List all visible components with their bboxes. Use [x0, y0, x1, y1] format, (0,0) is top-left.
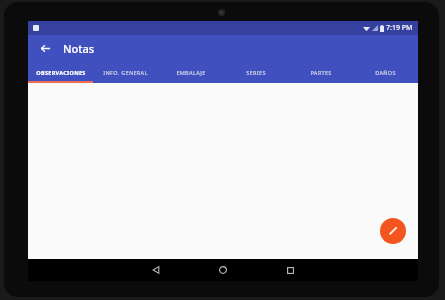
staticText: INFO. GENERAL: [103, 69, 148, 76]
staticText: 7:19 PM: [386, 23, 413, 33]
button[interactable]: EMBALAJE: [158, 61, 223, 83]
button[interactable]: Home: [212, 259, 234, 281]
button[interactable]: Back: [145, 259, 167, 281]
button[interactable]: DAÑOS: [353, 61, 418, 83]
staticText: Notas: [63, 41, 95, 56]
button[interactable]: Back: [35, 38, 55, 58]
button[interactable]: INFO. GENERAL: [93, 61, 158, 83]
staticText: PARTES: [310, 69, 332, 76]
button[interactable]: OBSERVACIONES: [28, 61, 93, 83]
staticText: OBSERVACIONES: [36, 69, 86, 76]
button[interactable]: PARTES: [288, 61, 353, 83]
button[interactable]: SERIES: [223, 61, 288, 83]
staticText: SERIES: [246, 69, 266, 76]
button[interactable]: Recent apps: [279, 259, 301, 281]
staticText: EMBALAJE: [176, 69, 206, 76]
button[interactable]: Edit note: [380, 218, 406, 244]
staticText: DAÑOS: [375, 69, 396, 76]
